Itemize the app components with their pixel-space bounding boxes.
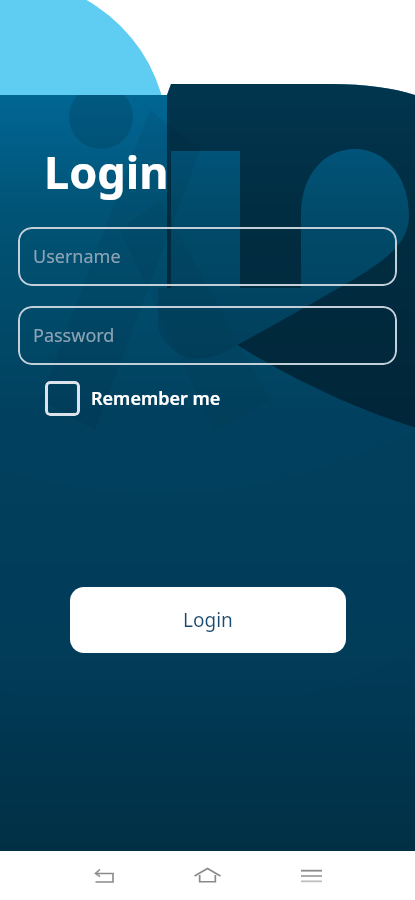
button[interactable]: Username: [18, 227, 397, 286]
button[interactable]: Password: [18, 306, 397, 365]
staticText: Login: [183, 607, 233, 633]
button[interactable]: Login: [70, 587, 346, 653]
staticText: Login: [44, 141, 169, 202]
button[interactable]: Recent apps: [259, 851, 363, 900]
staticText: Password: [33, 323, 115, 348]
button[interactable]: Back: [52, 851, 155, 900]
button[interactable]: Home: [155, 851, 259, 900]
staticText: Username: [33, 244, 121, 269]
button[interactable]: Remember me: [45, 381, 221, 416]
staticText: Remember me: [91, 386, 221, 411]
